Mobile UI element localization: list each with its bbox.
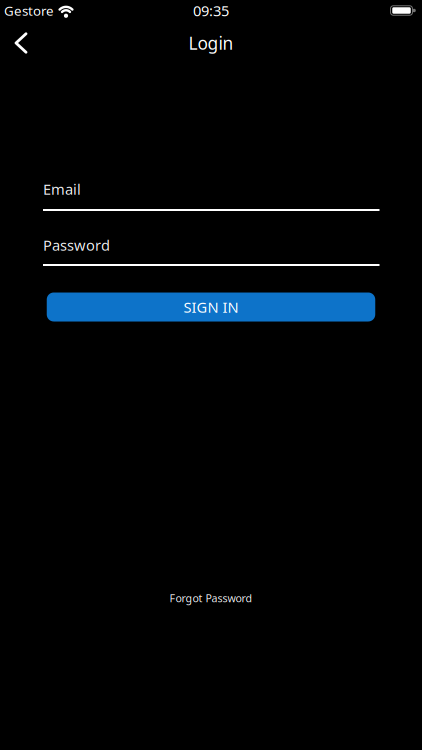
staticText: Login	[188, 31, 233, 54]
button[interactable]: Back	[0, 28, 34, 58]
button[interactable]: Email	[0, 179, 422, 211]
button[interactable]: Forgot Password	[169, 590, 252, 606]
button[interactable]: Password	[0, 235, 422, 266]
button[interactable]: SIGN IN	[47, 292, 375, 321]
staticText: Forgot Password	[169, 591, 252, 605]
staticText: Password	[43, 235, 110, 255]
staticText: Email	[43, 179, 81, 199]
staticText: SIGN IN	[183, 297, 238, 317]
staticText: 09:35	[193, 1, 229, 20]
staticText: Gestore	[4, 2, 54, 19]
